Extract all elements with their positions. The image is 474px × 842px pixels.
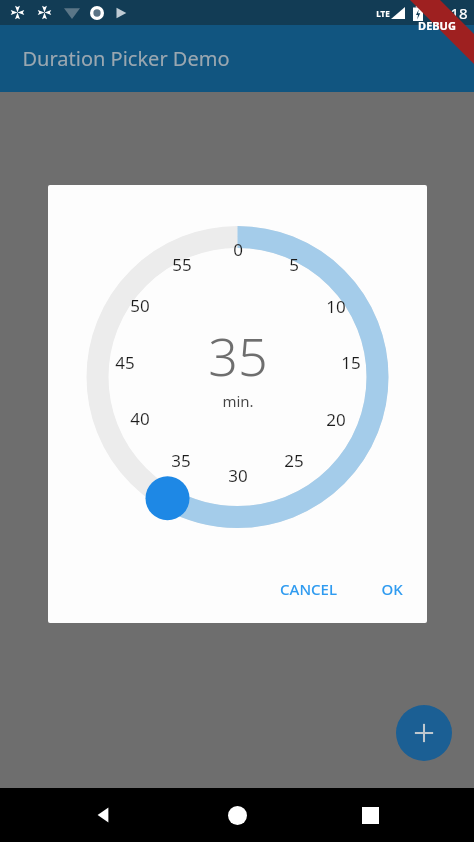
staticText: 35 bbox=[171, 449, 191, 472]
staticText: 0 bbox=[233, 238, 243, 261]
button[interactable]: CANCEL bbox=[268, 571, 349, 607]
staticText: LTE bbox=[376, 8, 390, 19]
staticText: 10 bbox=[326, 295, 346, 318]
staticText: 20 bbox=[326, 408, 346, 431]
staticText: 55 bbox=[172, 253, 192, 276]
button[interactable]: OK bbox=[369, 571, 415, 607]
staticText: min. bbox=[222, 391, 254, 411]
staticText: 15 bbox=[341, 351, 361, 374]
staticText: 30 bbox=[228, 464, 248, 487]
button[interactable]: Add bbox=[396, 705, 452, 761]
staticText: 10:18 bbox=[429, 3, 468, 23]
staticText: CANCEL bbox=[280, 579, 337, 599]
staticText: 50 bbox=[130, 294, 150, 317]
staticText: Duration Picker Demo bbox=[22, 45, 230, 72]
staticText: 40 bbox=[130, 407, 150, 430]
staticText: 25 bbox=[284, 449, 304, 472]
button[interactable]: Home bbox=[213, 791, 261, 839]
staticText: OK bbox=[381, 579, 403, 599]
staticText: DEBUG bbox=[418, 18, 456, 33]
button[interactable]: Recent apps bbox=[346, 791, 394, 839]
staticText: 5 bbox=[289, 253, 299, 276]
button[interactable]: Back bbox=[80, 791, 128, 839]
staticText: 45 bbox=[115, 351, 135, 374]
staticText: 35 bbox=[208, 320, 268, 391]
